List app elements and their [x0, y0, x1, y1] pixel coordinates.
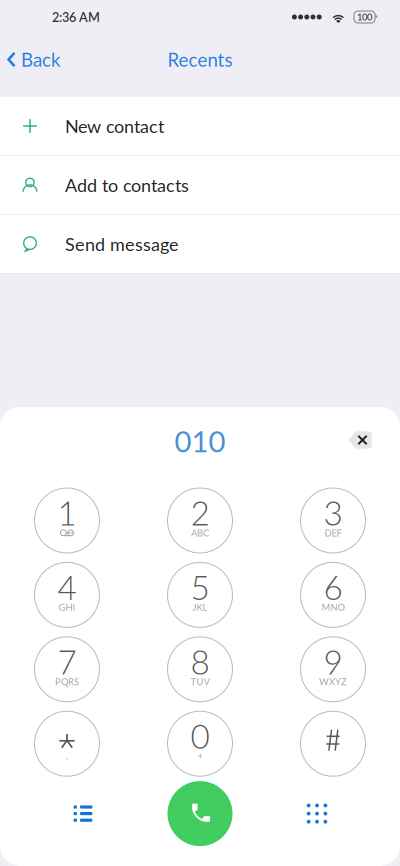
staticText: JKL	[192, 602, 207, 613]
staticText: ,	[66, 750, 68, 762]
button[interactable]: 2	[167, 488, 232, 553]
button[interactable]: 4	[34, 562, 99, 627]
button[interactable]: 5	[167, 562, 232, 627]
staticText: 3	[323, 493, 342, 533]
button[interactable]: ,	[34, 711, 99, 776]
button[interactable]: 8	[167, 637, 232, 702]
staticText: Send message	[65, 233, 179, 255]
staticText: DEF	[324, 527, 341, 538]
staticText: PQRS	[55, 676, 79, 687]
staticText: WXYZ	[319, 676, 347, 687]
button[interactable]: Keypad	[275, 781, 359, 847]
button[interactable]	[300, 711, 365, 776]
staticText: 8	[190, 641, 209, 681]
button[interactable]: 7	[34, 637, 99, 702]
staticText: MNO	[321, 602, 344, 613]
staticText: 010	[174, 423, 225, 459]
button[interactable]: Back	[0, 40, 70, 79]
button[interactable]: 6	[300, 562, 365, 627]
staticText: 5	[190, 567, 209, 607]
staticText: Back	[21, 48, 60, 71]
button[interactable]: 3	[300, 488, 365, 553]
staticText: 6	[323, 567, 342, 607]
staticText: 0	[190, 716, 209, 756]
staticText: 2	[190, 493, 209, 533]
staticText: GHI	[58, 602, 75, 613]
staticText: 100	[357, 11, 372, 23]
button[interactable]: 1	[34, 488, 99, 553]
staticText: 9	[323, 641, 342, 681]
button[interactable]: Send message	[0, 215, 400, 274]
button[interactable]: Call log	[41, 781, 125, 847]
staticText: New contact	[65, 115, 164, 137]
button[interactable]: 9	[300, 637, 365, 702]
button[interactable]: New contact	[0, 97, 400, 156]
staticText: Add to contacts	[65, 174, 189, 196]
button[interactable]: 0	[167, 711, 232, 776]
staticText: Recents	[167, 48, 232, 71]
staticText: 1	[57, 493, 76, 533]
staticText: +	[197, 750, 202, 762]
staticText: 4	[57, 567, 76, 607]
staticText: ABC	[191, 527, 209, 538]
button[interactable]: Add to contacts	[0, 156, 400, 215]
staticText: 2:36 AM	[52, 9, 100, 25]
button[interactable]: Delete	[342, 425, 378, 455]
staticText: 7	[57, 641, 76, 681]
staticText: TUV	[190, 676, 209, 687]
button[interactable]: Call	[167, 781, 232, 846]
